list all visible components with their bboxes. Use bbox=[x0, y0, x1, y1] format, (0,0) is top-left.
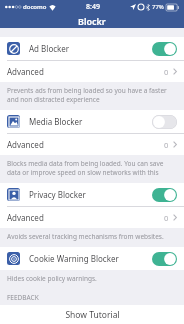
button[interactable]: Privacy Blocker bbox=[0, 183, 184, 206]
staticText: Avoids several tracking mechanisms from … bbox=[7, 232, 164, 241]
button[interactable]: Show Tutorial bbox=[0, 305, 184, 324]
staticText: Privacy Blocker bbox=[29, 189, 86, 200]
staticText: docomo bbox=[23, 3, 47, 11]
button[interactable]: Ad Blocker bbox=[0, 37, 184, 60]
button[interactable]: Toggle on bbox=[152, 42, 177, 56]
staticText: 0 bbox=[164, 67, 169, 77]
button[interactable]: Toggle off bbox=[152, 115, 177, 129]
staticText: Blocks media data from being loaded. You… bbox=[7, 159, 174, 177]
staticText: Ad Blocker bbox=[29, 43, 70, 54]
staticText: Cookie Warning Blocker bbox=[29, 253, 119, 264]
staticText: Prevents ads from being loaded so you ha… bbox=[7, 86, 174, 104]
staticText: FEEDBACK bbox=[7, 293, 39, 302]
button[interactable]: Toggle on bbox=[152, 252, 177, 266]
button[interactable]: Media Blocker bbox=[0, 110, 184, 133]
staticText: Advanced bbox=[7, 212, 44, 223]
staticText: 0 bbox=[164, 140, 169, 150]
button[interactable]: Advanced bbox=[0, 207, 184, 228]
button[interactable]: Advanced bbox=[0, 134, 184, 155]
staticText: 8:49 bbox=[86, 2, 100, 12]
staticText: Hides cookie policy warnings. bbox=[7, 274, 97, 283]
button[interactable]: Advanced bbox=[0, 61, 184, 82]
staticText: 77% bbox=[152, 3, 164, 11]
staticText: Blockr bbox=[78, 15, 106, 27]
button[interactable]: Toggle on bbox=[152, 188, 177, 202]
staticText: Advanced bbox=[7, 139, 44, 150]
staticText: Media Blocker bbox=[29, 116, 83, 127]
button[interactable]: Cookie Warning Blocker bbox=[0, 247, 184, 270]
staticText: Advanced bbox=[7, 66, 44, 77]
staticText: 0 bbox=[164, 213, 169, 223]
staticText: Show Tutorial bbox=[65, 309, 120, 321]
